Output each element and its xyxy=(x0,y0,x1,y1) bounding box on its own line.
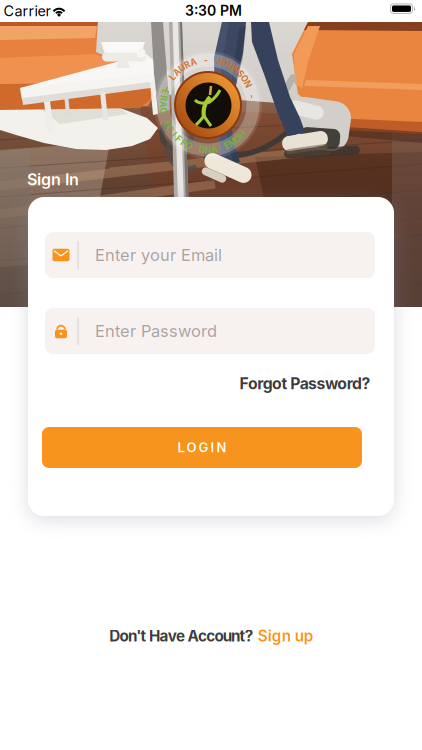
staticText: A xyxy=(174,67,180,77)
staticText xyxy=(245,124,247,134)
staticText: R xyxy=(184,60,190,70)
staticText: C xyxy=(160,106,167,116)
staticText: Enter Password xyxy=(95,321,217,341)
staticText: S xyxy=(238,69,244,79)
staticText: I xyxy=(173,129,175,140)
staticText: Carrier xyxy=(3,2,50,20)
staticText xyxy=(168,77,170,87)
staticText: - xyxy=(164,83,168,93)
staticText: C xyxy=(166,124,173,134)
staticText: - xyxy=(250,91,254,102)
staticText: O xyxy=(241,74,248,84)
staticText: H xyxy=(227,61,233,71)
button[interactable]: Sign up xyxy=(258,627,313,645)
staticText: - xyxy=(204,55,208,65)
staticText: M xyxy=(228,137,236,148)
staticText xyxy=(249,85,251,95)
staticText: O xyxy=(186,141,193,151)
staticText: Enter your Email xyxy=(95,245,222,265)
staticText: E xyxy=(224,140,229,151)
staticText: E xyxy=(164,118,169,129)
staticText: H xyxy=(239,129,246,139)
staticText: A xyxy=(190,57,196,68)
button[interactable]: Forgot Password? xyxy=(239,374,370,393)
staticText: 3:30 PM xyxy=(185,2,242,19)
staticText: Don't Have Account? xyxy=(109,627,254,645)
button[interactable]: Enter your Email xyxy=(45,232,375,278)
staticText: J xyxy=(216,56,221,66)
staticText: O xyxy=(234,133,241,144)
staticText: L xyxy=(170,72,175,82)
button[interactable]: LOGIN xyxy=(42,427,362,468)
staticText: U xyxy=(179,63,185,73)
staticText: LOGIN xyxy=(177,440,226,455)
staticText: O xyxy=(221,58,228,68)
staticText: A xyxy=(159,99,166,110)
staticText: E xyxy=(162,86,167,97)
staticText: D xyxy=(199,144,205,155)
staticText: N xyxy=(205,145,212,155)
staticText: N xyxy=(244,79,251,89)
staticText: R xyxy=(160,93,166,103)
staticText: Forgot Password? xyxy=(239,374,370,393)
staticText: N xyxy=(232,64,239,75)
staticText: Sign up xyxy=(258,627,313,645)
staticText xyxy=(164,112,166,123)
staticText: A xyxy=(211,144,218,155)
staticText: F xyxy=(181,137,186,148)
staticText: F xyxy=(176,134,181,144)
staticText: - xyxy=(247,118,251,129)
button[interactable]: Enter Password xyxy=(45,308,375,354)
staticText xyxy=(220,143,222,153)
staticText: Sign In xyxy=(27,170,79,189)
